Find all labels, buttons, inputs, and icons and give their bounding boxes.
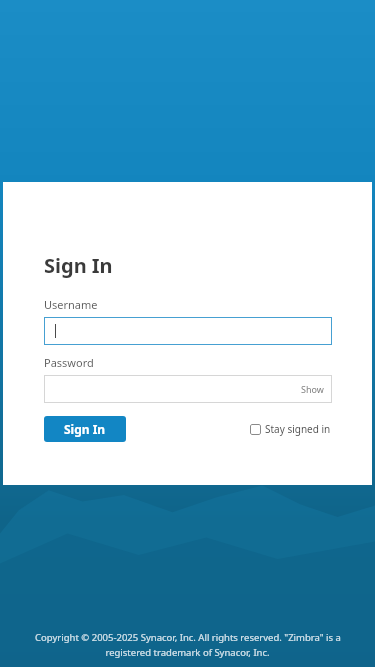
button[interactable]: Show: [299, 381, 326, 397]
staticText: Username: [44, 297, 98, 312]
staticText: Copyright © 2005-2025 Synacor, Inc. All …: [35, 631, 341, 644]
staticText: Sign In: [44, 252, 113, 279]
button[interactable]: Stay signed in: [248, 420, 333, 438]
button[interactable]: [44, 317, 332, 345]
button[interactable]: Show: [44, 375, 332, 403]
staticText: Sign In: [64, 421, 106, 437]
staticText: Stay signed in: [265, 422, 331, 436]
staticText: Password: [44, 355, 94, 370]
staticText: Show: [301, 383, 324, 395]
staticText: registered trademark of Synacor, Inc.: [105, 646, 270, 659]
button[interactable]: Sign In: [44, 416, 126, 442]
